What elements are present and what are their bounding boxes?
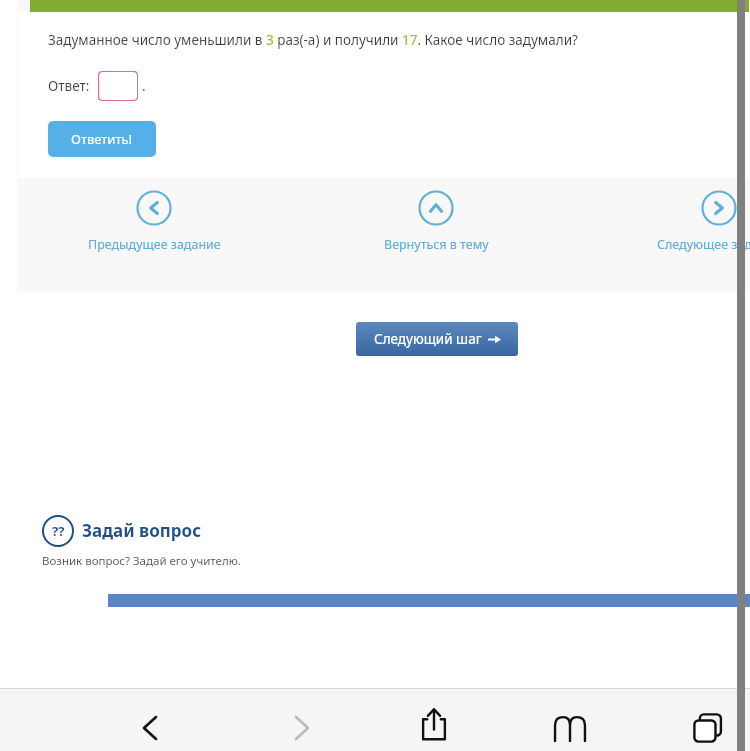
staticText: ??	[52, 522, 65, 540]
staticText: Ответ:	[48, 77, 90, 95]
staticText: Задуманное число уменьшили в 3 раз(-а) и…	[48, 31, 578, 49]
button[interactable]: Следующий шаг	[356, 322, 518, 356]
button[interactable]	[98, 71, 138, 101]
button[interactable]: Ответить!	[48, 121, 156, 157]
button[interactable]: Share	[412, 702, 456, 746]
button[interactable]: Forward	[280, 706, 324, 750]
button[interactable]: Предыдущее задание	[80, 190, 228, 253]
button[interactable]: Back	[128, 706, 172, 750]
button[interactable]: Вернуться в тему	[362, 190, 510, 253]
staticText: Следующий шаг	[374, 330, 482, 348]
button[interactable]: Bookmarks	[548, 706, 592, 750]
staticText: Следующее задание	[657, 236, 750, 253]
staticText: .	[142, 77, 146, 95]
staticText: Предыдущее задание	[88, 236, 221, 253]
button[interactable]: Tabs	[686, 706, 730, 750]
staticText: Задай вопрос	[82, 519, 202, 542]
staticText: Ответить!	[71, 130, 133, 148]
staticText: Возник вопрос? Задай его учителю.	[42, 553, 241, 569]
staticText: Вернуться в тему	[384, 236, 489, 253]
button[interactable]: Следующее задание	[645, 190, 750, 253]
